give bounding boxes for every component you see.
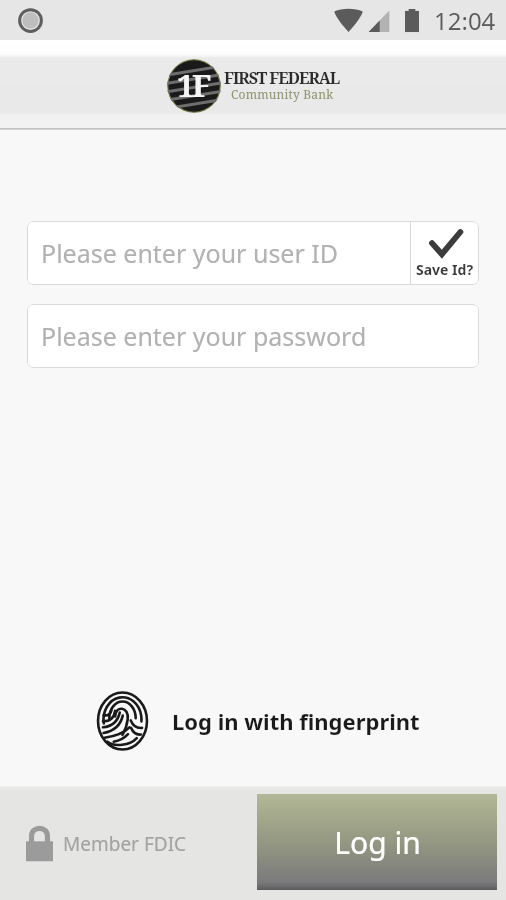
staticText: Log in: [334, 822, 421, 863]
staticText: Please enter your password: [41, 319, 367, 353]
staticText: 1F: [177, 64, 209, 106]
button[interactable]: Please enter your password: [27, 304, 479, 368]
button[interactable]: Log in: [257, 794, 497, 890]
other: Notification: [18, 8, 43, 33]
staticText: Community Bank: [231, 86, 334, 102]
staticText: Log in with fingerprint: [172, 706, 420, 736]
button[interactable]: Member FDIC: [26, 825, 187, 862]
staticText: Save Id?: [416, 260, 474, 279]
button[interactable]: Log in with fingerprint: [4, 691, 506, 751]
staticText: FIRST FEDERAL: [224, 67, 340, 89]
staticText: Please enter your user ID: [41, 236, 339, 270]
staticText: 12:04: [434, 4, 496, 37]
button[interactable]: Save Id?: [411, 221, 479, 285]
staticText: Member FDIC: [63, 831, 187, 857]
button[interactable]: Please enter your user ID: [27, 221, 410, 285]
